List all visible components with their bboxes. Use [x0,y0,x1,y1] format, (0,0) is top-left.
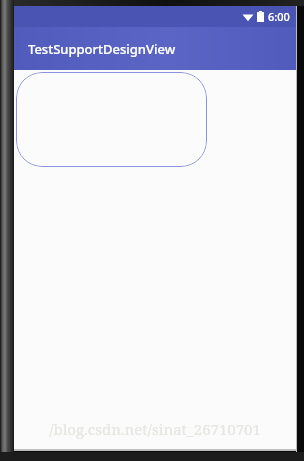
staticText: TestSupportDesignView [28,40,176,58]
other: Battery full [257,11,264,22]
button[interactable]: TestSupportDesignView [14,27,296,70]
staticText: /blog.csdn.net/sinat_26710701 [14,419,296,439]
other: Wi-Fi signal [242,12,254,22]
staticText: 6:00 [268,9,290,24]
button[interactable] [16,72,207,167]
